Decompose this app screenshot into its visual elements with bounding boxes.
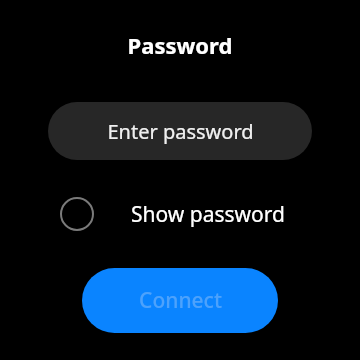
other: Show password toggle bbox=[56, 193, 98, 235]
staticText: Password bbox=[0, 30, 360, 60]
staticText: Show password bbox=[108, 200, 308, 229]
staticText: Enter password bbox=[107, 118, 254, 145]
staticText: Connect bbox=[139, 286, 222, 315]
button[interactable]: Enter password bbox=[48, 102, 312, 160]
button[interactable]: Show password toggle bbox=[0, 176, 360, 252]
button[interactable]: Connect bbox=[82, 268, 278, 333]
